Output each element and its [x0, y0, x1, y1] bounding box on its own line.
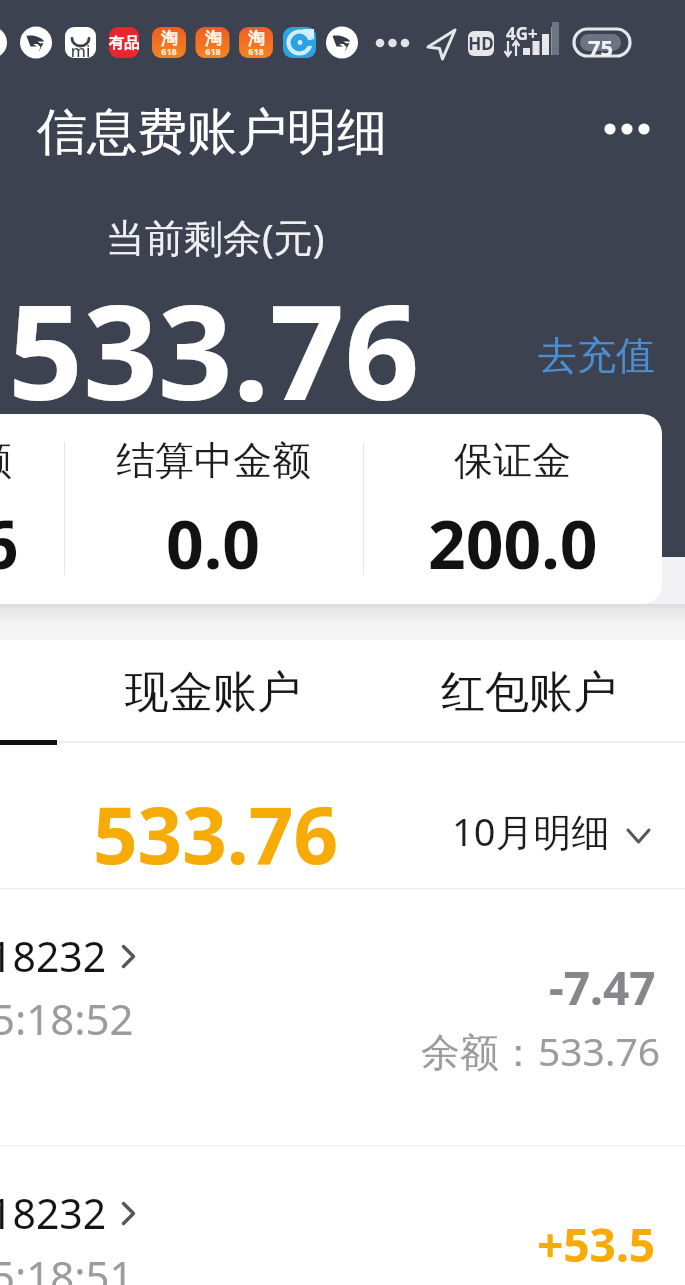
staticText: HD [468, 32, 494, 55]
staticText: 618 [196, 45, 230, 57]
staticText: +53.5 [537, 1213, 656, 1276]
staticText: 结算中金额 [116, 436, 311, 485]
staticText: 5:18:51 [0, 1247, 134, 1285]
button[interactable]: More options [594, 105, 664, 153]
staticText: 618 [152, 45, 186, 57]
staticText: 现金账户 [125, 665, 301, 720]
staticText: 533.76 [0, 498, 19, 588]
staticText: 淘 [196, 28, 230, 49]
staticText: 533.76 [8, 260, 420, 438]
staticText: 可提现余额 [0, 436, 12, 485]
staticText: 当前剩余(元) [106, 210, 325, 263]
staticText: 75 [580, 32, 621, 62]
button[interactable]: 红包账户 [370, 636, 685, 742]
other: Status bar [0, 0, 685, 84]
staticText: mi [65, 40, 96, 62]
button[interactable]: 18232 [0, 888, 685, 1145]
staticText: 5:18:52 [0, 990, 134, 1047]
button[interactable]: 10月明细 [440, 794, 668, 860]
staticText: 有品 [109, 34, 139, 53]
staticText: 淘 [152, 28, 186, 49]
staticText: 保证金 [454, 436, 571, 485]
staticText: 红包账户 [441, 665, 617, 720]
button[interactable]: 去充值 [524, 320, 669, 390]
staticText: 信息费账户明细 [37, 101, 387, 164]
staticText: 去充值 [538, 331, 655, 380]
staticText: 余额：533.76 [421, 1024, 660, 1077]
button[interactable]: 18232 [0, 1145, 685, 1285]
staticText: 0.0 [166, 498, 261, 588]
staticText: 618 [239, 45, 273, 57]
button[interactable]: 保证金 [363, 414, 662, 604]
staticText: 淘 [239, 28, 273, 49]
staticText: 18232 [0, 1185, 107, 1241]
staticText: 18232 [0, 928, 107, 984]
staticText: 10月明细 [452, 805, 610, 857]
button[interactable]: 结算中金额 [64, 414, 363, 604]
button[interactable]: 可提现余额 [0, 414, 64, 604]
staticText: 533.76 [93, 781, 338, 887]
staticText: -7.47 [549, 956, 656, 1019]
staticText: 4G+ [506, 22, 538, 45]
staticText: 200.0 [428, 498, 598, 588]
button[interactable]: 现金账户 [54, 636, 371, 742]
